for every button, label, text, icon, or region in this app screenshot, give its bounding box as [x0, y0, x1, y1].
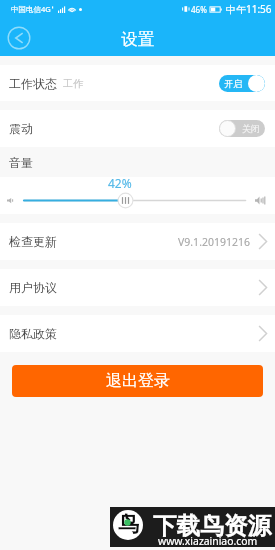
staticText: 工作	[63, 77, 83, 90]
button[interactable]: 退出登录	[12, 365, 263, 397]
staticText: 震动	[9, 121, 33, 136]
staticText: 鸟	[118, 511, 139, 537]
staticText: 46%	[191, 4, 207, 15]
staticText: 退出登录	[106, 371, 170, 391]
button[interactable]: 关闭	[219, 120, 265, 137]
staticText: 隐私政策	[9, 326, 57, 341]
staticText: 设置	[121, 29, 154, 50]
staticText: 中午11:56	[226, 2, 272, 16]
staticText: www.xiazainiao.com	[158, 534, 258, 548]
staticText: 42%	[108, 175, 132, 191]
button[interactable]: 工作状态	[0, 65, 275, 101]
staticText: 中国电信4G	[11, 4, 51, 14]
button[interactable]: Back	[7, 26, 31, 50]
staticText: V9.1.20191216	[178, 235, 250, 249]
staticText: 音量	[9, 155, 33, 170]
staticText: 开启	[224, 78, 242, 89]
button[interactable]: 开启	[219, 75, 265, 92]
staticText: 用户协议	[9, 280, 57, 295]
button[interactable]: 隐私政策	[0, 315, 275, 352]
staticText: 下载鸟资源	[153, 511, 271, 541]
staticText: 关闭	[242, 123, 260, 134]
staticText: 检查更新	[9, 234, 57, 249]
button[interactable]: 检查更新	[0, 223, 275, 260]
staticText: 工作状态	[9, 76, 57, 91]
button[interactable]: 用户协议	[0, 269, 275, 306]
button[interactable]: 震动	[0, 110, 275, 147]
